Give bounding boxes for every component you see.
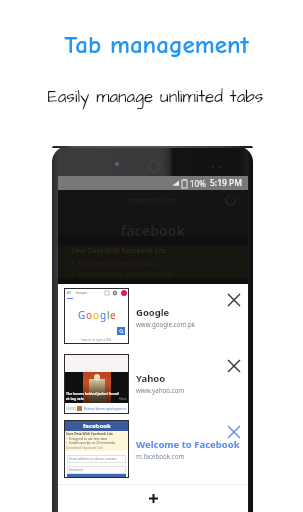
button[interactable]: New tab [58, 485, 248, 511]
staticText: Save Data With Facebook Lite [66, 432, 113, 436]
button[interactable]: Close tab Welcome to Facebook [221, 419, 247, 445]
staticText: www.google.com.pk [136, 320, 196, 328]
staticText: Password [67, 468, 84, 472]
staticText: • Designed to use less data [66, 437, 108, 441]
staticText: Yahoo [119, 397, 127, 401]
button[interactable]: Close tab Google [221, 287, 247, 313]
staticText: facebook [83, 422, 111, 430]
staticText: 10% [190, 178, 206, 189]
staticText: at tag sale [66, 396, 84, 401]
staticText: • Designed to use less data [71, 259, 157, 268]
staticText: Images [76, 291, 88, 295]
staticText: 5:19 PM [210, 177, 243, 189]
staticText: e [110, 308, 116, 322]
staticText: Yahoo [136, 372, 166, 385]
staticText: The horror behind jacket found [66, 391, 119, 396]
button[interactable]: Close tab Yahoo [221, 353, 247, 379]
staticText: l [107, 308, 110, 322]
staticText: G [78, 308, 86, 322]
button[interactable]: All [58, 288, 248, 344]
staticText: • Installs quickly on 2G networks [71, 270, 174, 279]
staticText: m.facebook.com [136, 452, 185, 460]
staticText: o [93, 308, 100, 322]
staticText: • Installs quickly on 2G networks [66, 441, 116, 445]
staticText: Save Data With Facebook Lite [71, 246, 167, 255]
staticText: Search or type a URL [64, 338, 129, 342]
staticText: www.yahoo.com [136, 386, 185, 394]
button[interactable]: facebook [58, 420, 248, 478]
staticText: Email address or phone number [67, 457, 117, 461]
staticText: Easily manage unlimited tabs [4, 85, 303, 109]
staticText: Welcome to Facebook [136, 438, 240, 451]
staticText: m.facebook.com [58, 196, 248, 205]
staticText: Britney Spears apologizes to [84, 407, 127, 411]
staticText: facebook [58, 221, 248, 240]
staticText: Tab management [5, 30, 303, 59]
staticText: g [100, 308, 107, 322]
staticText: Google [136, 306, 170, 319]
staticText: o [86, 308, 93, 322]
staticText: Download Facebook Lite [66, 446, 103, 450]
button[interactable]: The horror behind jacket found [58, 354, 248, 414]
staticText: All [67, 291, 71, 295]
